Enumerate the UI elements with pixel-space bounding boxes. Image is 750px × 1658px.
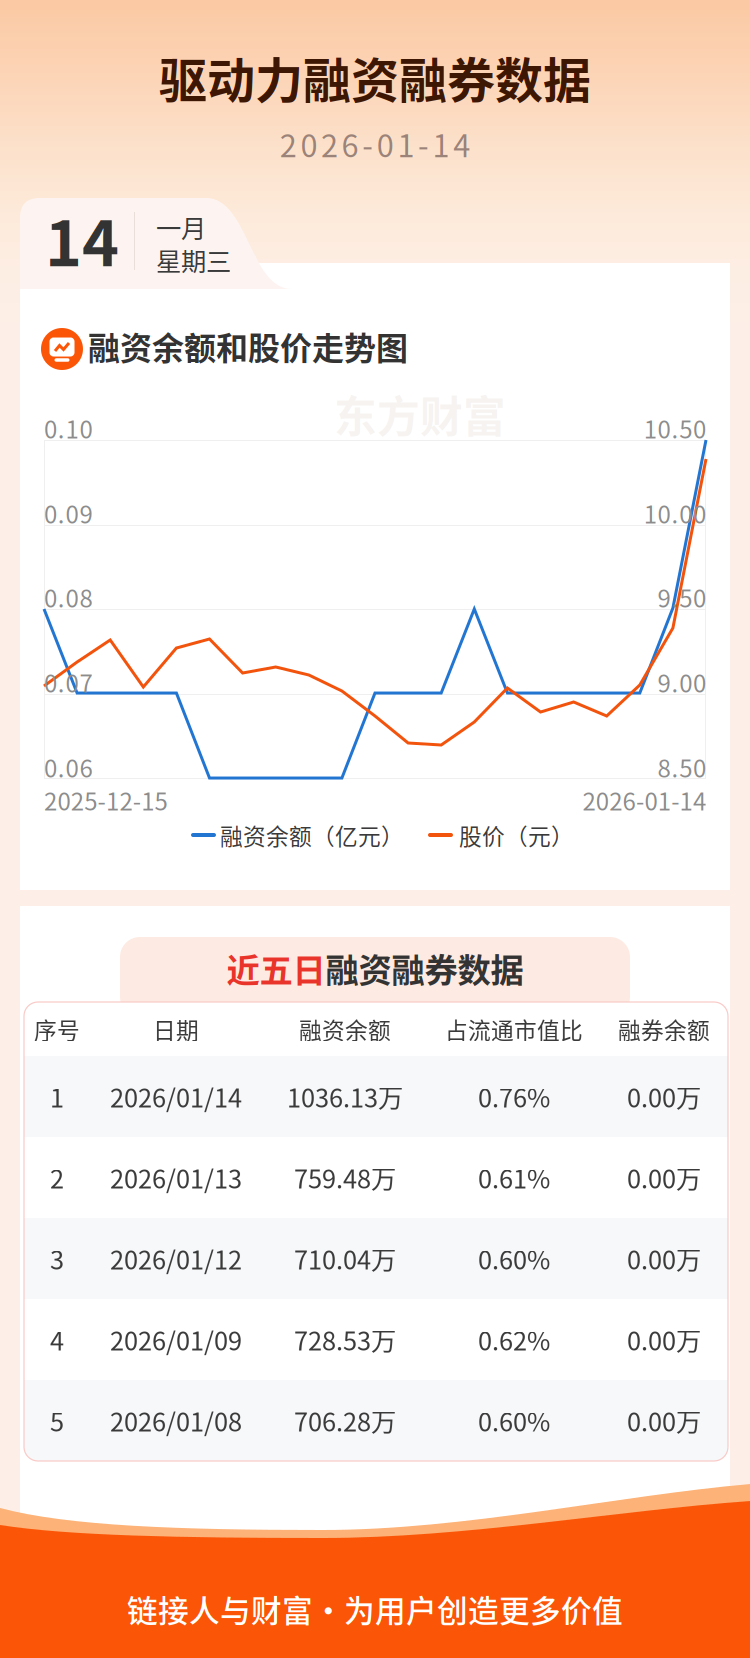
- staticText: 股价（元）: [459, 819, 574, 851]
- staticText: 占流通市值比: [445, 1013, 583, 1045]
- staticText: 0.61%: [478, 1159, 550, 1196]
- staticText: 10.50: [644, 411, 706, 445]
- staticText: 3: [50, 1240, 64, 1277]
- staticText: 2026/01/13: [110, 1159, 242, 1196]
- staticText: 0.00万: [627, 1321, 701, 1358]
- staticText: 0.00万: [627, 1159, 701, 1196]
- staticText: 2026/01/12: [110, 1240, 242, 1277]
- staticText: 2: [50, 1159, 64, 1196]
- staticText: 759.48万: [294, 1159, 396, 1196]
- staticText: 0.08: [44, 580, 92, 614]
- staticText: 0.00万: [627, 1078, 701, 1115]
- staticText: 0.00万: [627, 1240, 701, 1277]
- staticText: 0.76%: [478, 1078, 550, 1115]
- staticText: 710.04万: [294, 1240, 396, 1277]
- staticText: 东方财富: [334, 383, 506, 445]
- staticText: 0.09: [44, 496, 92, 530]
- staticText: 2026-01-14: [280, 122, 470, 166]
- staticText: 2025-12-15: [44, 783, 168, 817]
- staticText: 5: [50, 1402, 64, 1439]
- staticText: 0.60%: [478, 1402, 550, 1439]
- staticText: 10.00: [644, 496, 706, 530]
- staticText: 一月: [156, 209, 206, 245]
- staticText: 8.50: [658, 750, 706, 784]
- staticText: 序号: [34, 1013, 80, 1045]
- staticText: 日期: [153, 1013, 199, 1045]
- staticText: 融资融券数据: [325, 944, 523, 992]
- staticText: 星期三: [156, 242, 231, 278]
- staticText: 4: [50, 1321, 64, 1358]
- staticText: 728.53万: [294, 1321, 396, 1358]
- staticText: 0.62%: [478, 1321, 550, 1358]
- staticText: 2026/01/14: [110, 1078, 242, 1115]
- staticText: 0.10: [44, 411, 92, 445]
- staticText: 2026/01/08: [110, 1402, 242, 1439]
- staticText: 706.28万: [294, 1402, 396, 1439]
- staticText: 融资余额（亿元）: [220, 819, 404, 851]
- staticText: 融资余额: [299, 1013, 391, 1045]
- staticText: 0.60%: [478, 1240, 550, 1277]
- staticText: 链接人与财富·为用户创造更多价值: [127, 1587, 623, 1631]
- staticText: 1: [50, 1078, 64, 1115]
- staticText: 1036.13万: [287, 1078, 403, 1115]
- staticText: 2026-01-14: [582, 783, 706, 817]
- staticText: 东方财富: [324, 1228, 496, 1290]
- staticText: 14: [45, 194, 119, 284]
- staticText: 0.06: [44, 750, 92, 784]
- staticText: 近五日: [226, 944, 325, 992]
- staticText: 0.00万: [627, 1402, 701, 1439]
- staticText: 0.07: [44, 665, 92, 699]
- staticText: 9.00: [658, 665, 706, 699]
- staticText: 9.50: [658, 580, 706, 614]
- staticText: 2026/01/09: [110, 1321, 242, 1358]
- staticText: 驱动力融资融券数据: [159, 42, 591, 112]
- staticText: 融券余额: [618, 1013, 710, 1045]
- staticText: 融资余额和股价走势图: [88, 323, 408, 369]
